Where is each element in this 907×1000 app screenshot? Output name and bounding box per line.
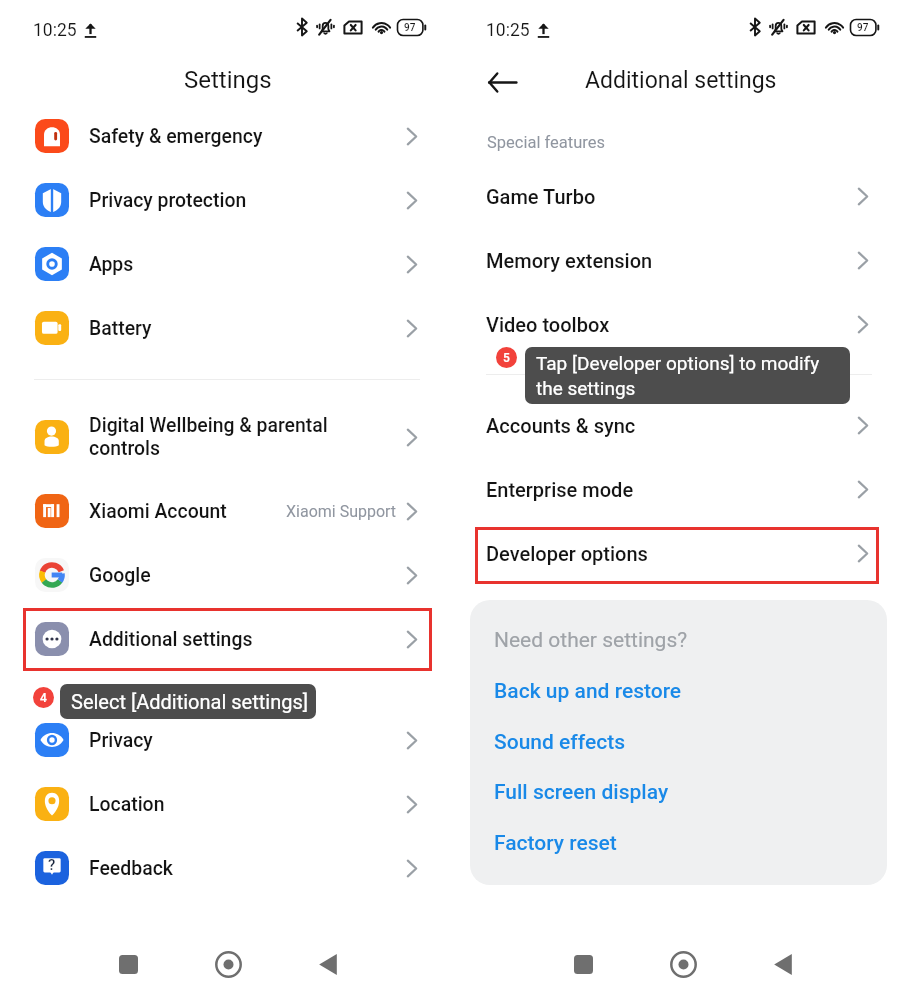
button[interactable]: Back <box>479 59 525 105</box>
button[interactable]: Game Turbo <box>455 164 907 228</box>
button[interactable]: Memory extension <box>455 228 907 292</box>
staticText: Apps <box>89 253 134 276</box>
staticText: Google <box>89 564 151 587</box>
button[interactable]: Home <box>202 938 254 990</box>
staticText: Additional settings <box>89 628 253 651</box>
staticText: Safety & emergency <box>89 125 263 148</box>
button[interactable]: Sound effects <box>494 730 626 755</box>
staticText: Select [Additional settings] <box>71 690 309 713</box>
staticText: Developer options <box>486 542 648 565</box>
button[interactable]: Back up and restore <box>494 679 682 704</box>
staticText: ? <box>48 856 56 874</box>
staticText: 97 <box>857 22 869 34</box>
button[interactable]: Location <box>0 772 455 836</box>
staticText: Xiaomi Account <box>89 500 227 523</box>
staticText: Accounts & sync <box>486 414 636 437</box>
button[interactable]: Recents <box>557 938 609 990</box>
button[interactable]: Accounts & sync <box>455 393 907 457</box>
staticText: Video toolbox <box>486 313 610 336</box>
staticText: Special features <box>487 133 606 152</box>
button[interactable]: Video toolbox <box>455 292 907 356</box>
button[interactable]: Factory reset <box>494 831 617 856</box>
staticText: Privacy <box>89 729 153 752</box>
button[interactable]: Privacy <box>0 708 455 772</box>
staticText: Game Turbo <box>486 185 596 208</box>
staticText: Additional settings <box>585 67 777 94</box>
staticText: Memory extension <box>486 249 653 272</box>
button[interactable]: Developer options <box>455 521 907 585</box>
button[interactable]: Back <box>302 938 354 990</box>
button[interactable]: Privacy protection <box>0 168 455 232</box>
staticText: Settings <box>184 66 272 94</box>
staticText: Enterprise mode <box>486 478 634 501</box>
staticText: controls <box>89 437 160 460</box>
staticText: Need other settings? <box>494 628 688 653</box>
button[interactable]: ? <box>0 836 455 900</box>
staticText: Location <box>89 793 165 816</box>
button[interactable]: Enterprise mode <box>455 457 907 521</box>
staticText: 97 <box>404 22 416 34</box>
staticText: Privacy protection <box>89 189 247 212</box>
staticText: Feedback <box>89 857 173 880</box>
staticText: Tap [Developer options] to modify the se… <box>536 352 820 399</box>
staticText: Xiaomi Support <box>286 502 397 521</box>
button[interactable]: Digital Wellbeing & parental <box>0 405 455 469</box>
staticText: 10:25 <box>486 20 530 41</box>
button[interactable]: Full screen display <box>494 780 669 805</box>
button[interactable]: Google <box>0 543 455 607</box>
button[interactable]: Home <box>657 938 709 990</box>
button[interactable]: Battery <box>0 296 455 360</box>
button[interactable]: Additional settings <box>0 607 455 671</box>
staticText: Digital Wellbeing & parental <box>89 414 328 437</box>
button[interactable]: Safety & emergency <box>0 104 455 168</box>
button[interactable]: Back <box>757 938 809 990</box>
staticText: 5 <box>503 351 510 365</box>
staticText: 10:25 <box>33 20 77 41</box>
button[interactable]: Recents <box>102 938 154 990</box>
staticText: Battery <box>89 317 152 340</box>
button[interactable]: Apps <box>0 232 455 296</box>
button[interactable]: Xiaomi Account <box>0 479 455 543</box>
staticText: 4 <box>40 691 47 705</box>
